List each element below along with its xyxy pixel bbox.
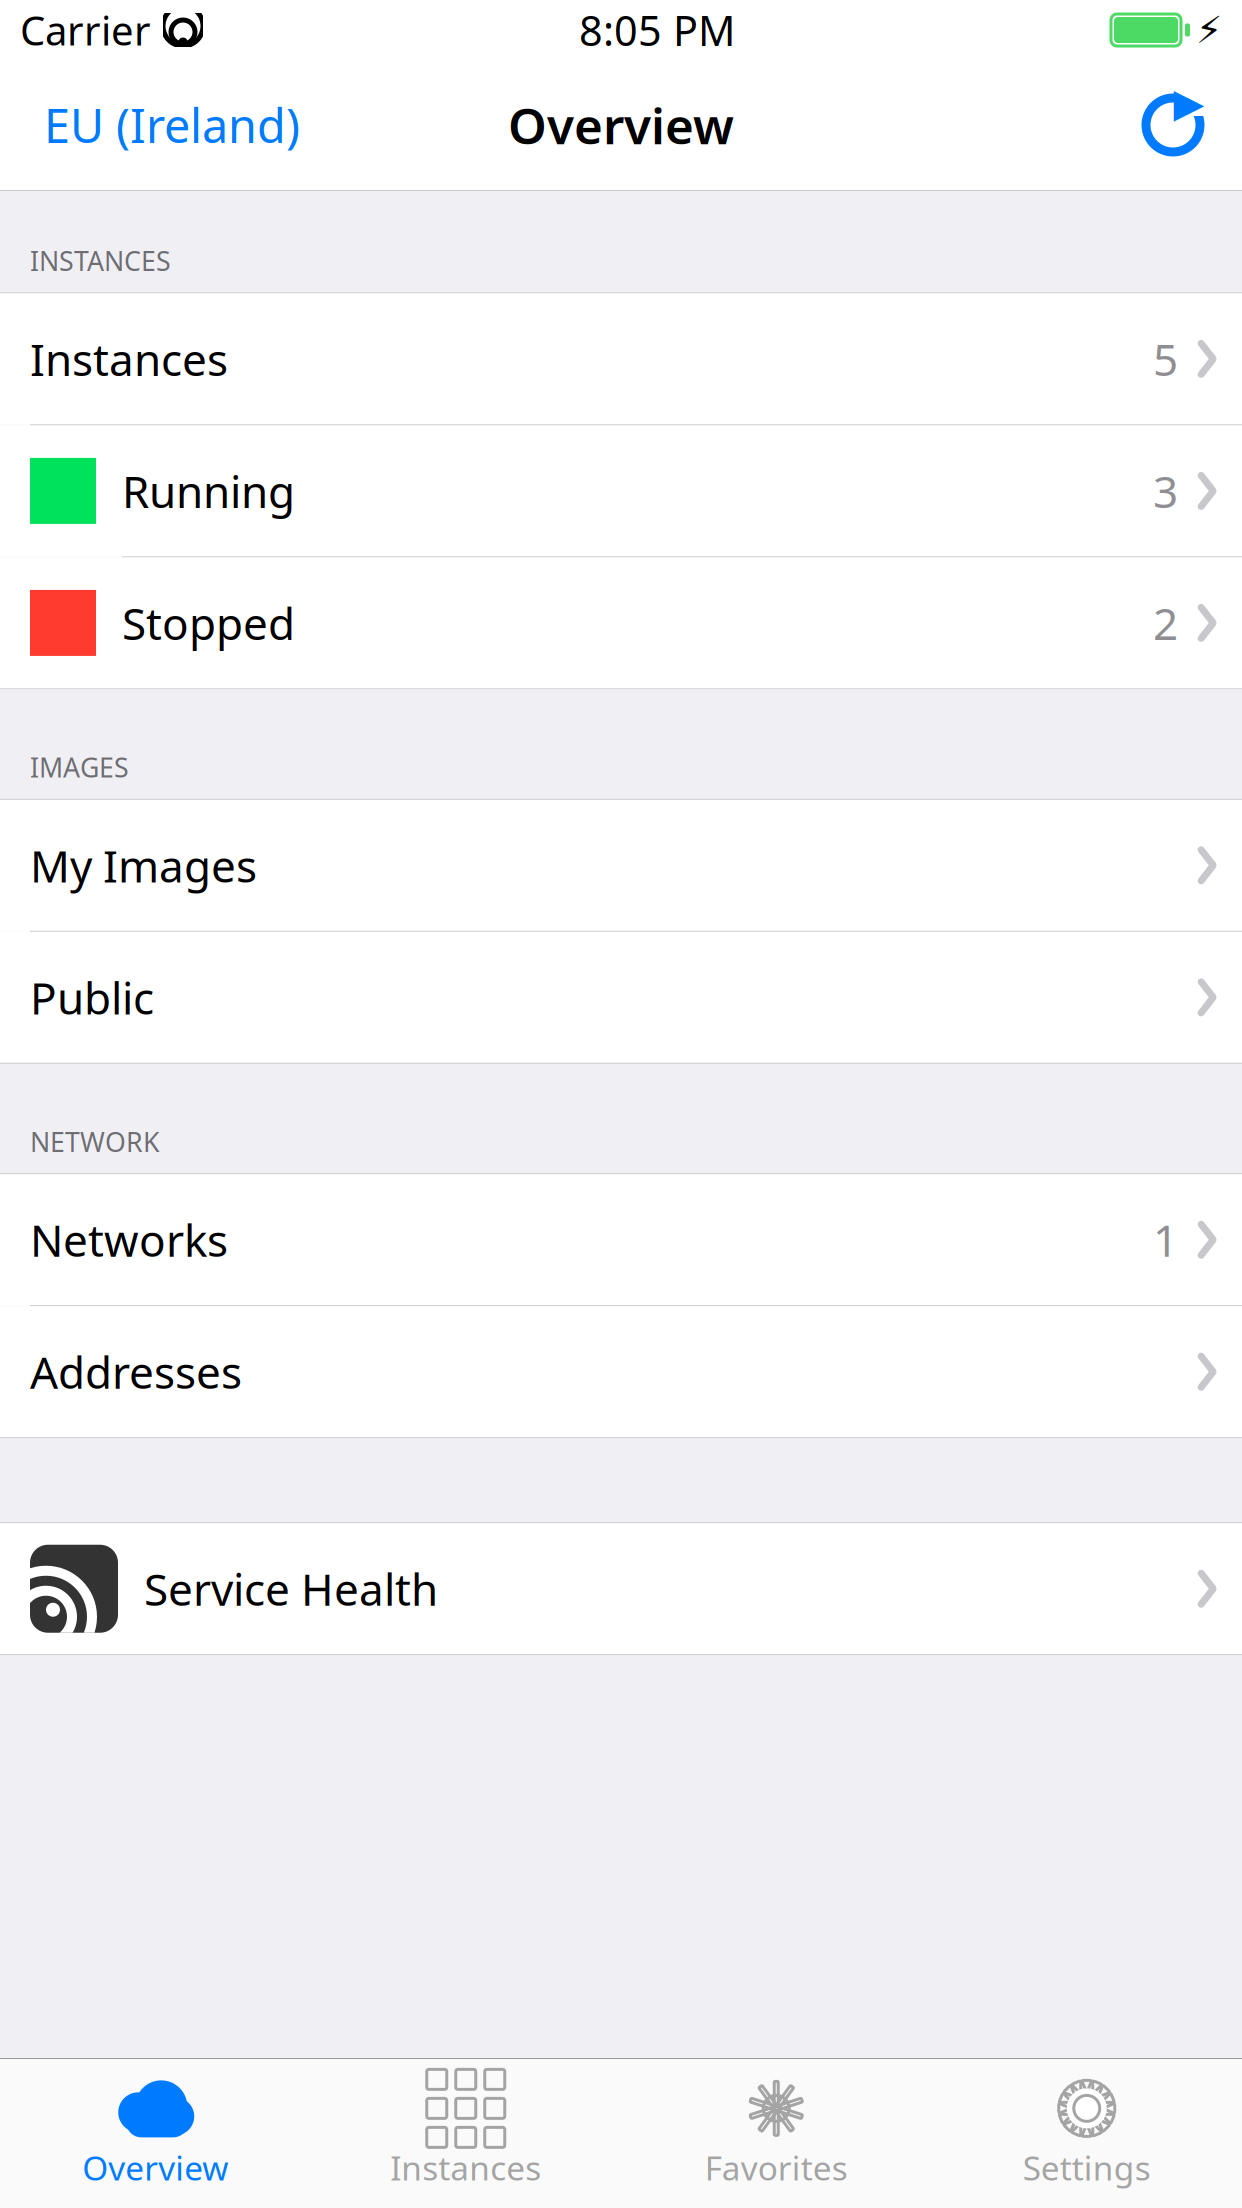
button[interactable]: Running — [0, 425, 1242, 556]
staticText: ▶ — [1173, 80, 1204, 126]
staticText: Carrier — [20, 3, 151, 56]
staticText: 2 — [1153, 594, 1178, 652]
button[interactable]: Instances — [0, 293, 1242, 424]
staticText: NETWORK — [30, 1124, 160, 1159]
staticText: Addresses — [30, 1342, 242, 1401]
staticText: Stopped — [122, 594, 295, 652]
button[interactable]: Public — [0, 932, 1242, 1063]
staticText: Instances — [390, 2145, 541, 2190]
staticText: Service Health — [144, 1559, 438, 1618]
button[interactable]: Refresh — [1138, 90, 1208, 160]
button[interactable]: Overview — [0, 2059, 310, 2207]
staticText: Running — [122, 462, 295, 520]
staticText: Favorites — [705, 2145, 848, 2190]
button[interactable]: Settings — [931, 2059, 1242, 2207]
staticText: Settings — [1023, 2145, 1151, 2190]
staticText: 8:05 PM — [579, 3, 735, 57]
staticText: Overview — [82, 2145, 228, 2190]
button[interactable]: My Images — [0, 800, 1242, 931]
button[interactable]: Service Health — [0, 1523, 1242, 1654]
button[interactable]: Addresses — [0, 1306, 1242, 1437]
staticText: ⚡︎ — [1196, 9, 1222, 51]
staticText: 3 — [1153, 462, 1178, 520]
staticText: INSTANCES — [30, 243, 171, 278]
staticText: Public — [30, 968, 154, 1026]
staticText: 1 — [1153, 1210, 1178, 1269]
button[interactable]: EU (Ireland) — [34, 82, 310, 168]
staticText: My Images — [30, 836, 257, 894]
staticText: IMAGES — [30, 749, 129, 785]
staticText: Instances — [30, 330, 228, 388]
button[interactable]: Stopped — [0, 557, 1242, 688]
staticText: EU (Ireland) — [44, 94, 300, 156]
button[interactable]: Networks — [0, 1174, 1242, 1305]
button[interactable]: Instances — [310, 2059, 621, 2207]
button[interactable]: Favorites — [621, 2059, 931, 2207]
staticText: Networks — [30, 1210, 228, 1269]
staticText: Overview — [508, 92, 734, 158]
staticText: 5 — [1153, 330, 1178, 388]
